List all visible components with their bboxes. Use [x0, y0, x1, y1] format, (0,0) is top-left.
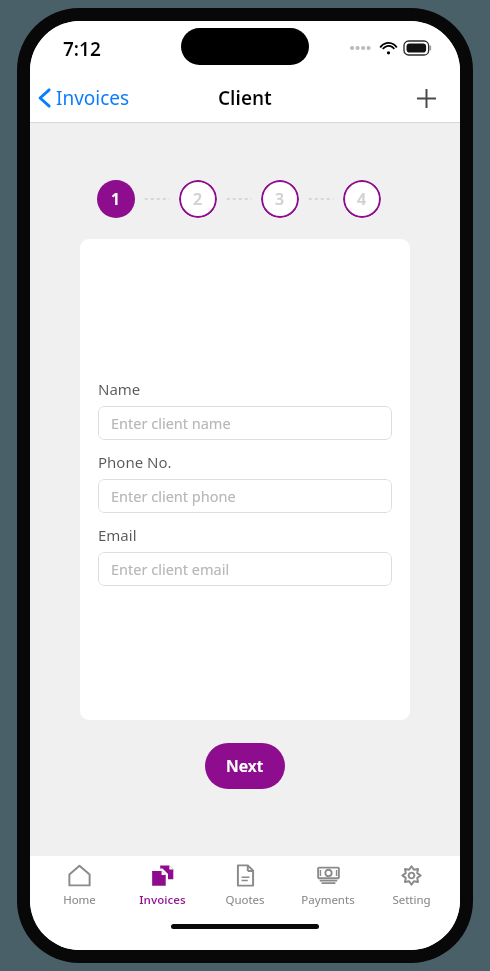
button[interactable]: Setting: [371, 856, 451, 918]
staticText: 1: [111, 188, 121, 210]
button[interactable]: 4: [343, 180, 381, 218]
button[interactable]: Enter client email: [98, 552, 392, 586]
staticText: Client: [218, 85, 272, 111]
staticText: Next: [226, 755, 264, 777]
button[interactable]: Next: [205, 743, 285, 789]
button[interactable]: Invoices: [122, 856, 202, 918]
staticText: 7:12: [63, 36, 101, 62]
staticText: Invoices: [139, 892, 186, 908]
staticText: Invoices: [56, 85, 130, 111]
button[interactable]: Enter client phone: [98, 479, 392, 513]
button[interactable]: Invoices: [30, 81, 138, 115]
staticText: 3: [275, 188, 285, 210]
staticText: Setting: [392, 892, 431, 908]
staticText: Enter client email: [111, 559, 230, 579]
staticText: Phone No.: [98, 452, 172, 472]
button[interactable]: Payments: [288, 856, 368, 918]
button[interactable]: Add: [409, 81, 443, 115]
staticText: 2: [193, 188, 203, 210]
staticText: Quotes: [225, 892, 265, 908]
staticText: Email: [98, 525, 137, 545]
button[interactable]: Quotes: [205, 856, 285, 918]
staticText: Enter client phone: [111, 486, 236, 506]
button[interactable]: 3: [261, 180, 299, 218]
button[interactable]: 1: [97, 180, 135, 218]
staticText: Enter client name: [111, 413, 231, 433]
staticText: Home: [63, 892, 96, 908]
button[interactable]: Enter client name: [98, 406, 392, 440]
staticText: Payments: [301, 892, 355, 908]
staticText: Name: [98, 379, 141, 399]
button[interactable]: 2: [179, 180, 217, 218]
staticText: 4: [357, 188, 367, 210]
button[interactable]: Home: [39, 856, 119, 918]
